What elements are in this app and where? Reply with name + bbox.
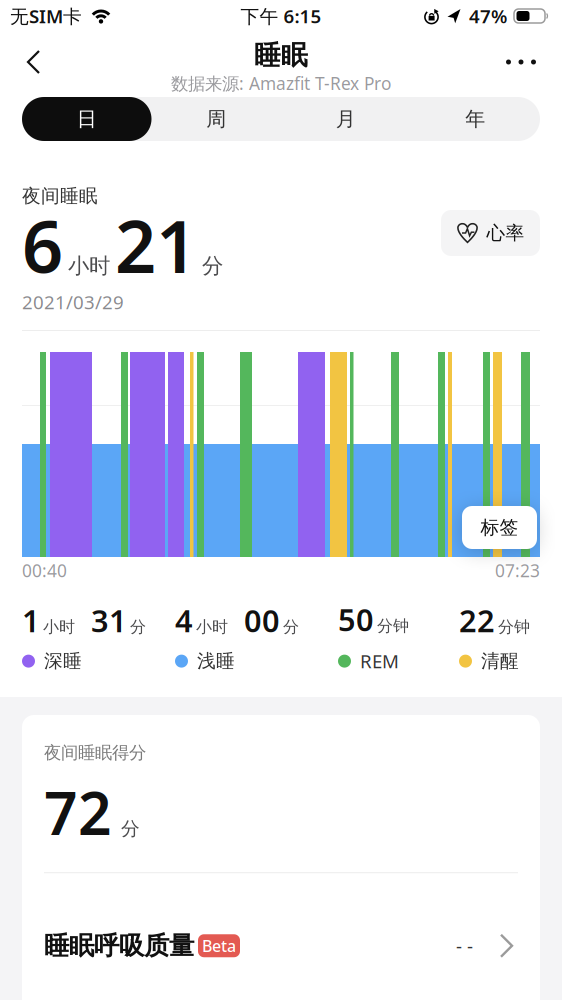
staticText: 标签 [480,516,518,539]
staticText: 47% [469,4,507,28]
staticText: 4 [175,600,193,641]
staticText: 无SIM卡 [10,4,82,28]
staticText: 72 [44,773,112,851]
staticText: 清醒 [481,650,519,673]
button[interactable]: 心率 [441,210,540,256]
staticText: 周 [206,107,226,131]
staticText: 夜间睡眠 [22,184,98,207]
staticText: 分钟 [377,616,409,636]
staticText: 浅睡 [197,650,235,673]
button[interactable]: 标签 [462,506,537,549]
staticText: 小时 [68,253,110,279]
staticText: 小时 [196,617,228,637]
staticText: 分 [130,617,146,637]
staticText: 分 [121,817,140,840]
staticText: 分 [283,617,299,637]
button[interactable]: 年 [410,97,540,141]
staticText: 日 [77,107,97,131]
button[interactable]: 睡眠呼吸质量 [44,873,518,961]
button[interactable]: 月 [281,97,410,141]
button[interactable] [0,41,39,83]
staticText: 6 [22,197,63,293]
staticText: 数据来源: Amazfit T-Rex Pro [171,72,391,95]
staticText: 07:23 [495,559,540,582]
button[interactable] [506,45,562,78]
staticText: 50 [338,599,374,640]
staticText: Beta [202,935,236,956]
staticText: REM [360,649,399,673]
staticText: 分钟 [498,617,530,637]
staticText: 夜间睡眠得分 [44,742,146,763]
staticText: 睡眠 [254,39,308,72]
staticText: 小时 [43,617,75,637]
staticText: - - [456,933,473,958]
button[interactable]: 日 [22,97,151,141]
staticText: 睡眠呼吸质量 [44,930,194,961]
staticText: 年 [465,107,485,131]
staticText: 深睡 [44,650,82,673]
staticText: 2021/03/29 [22,290,124,314]
button[interactable]: 周 [151,97,281,141]
staticText: 22 [459,600,495,641]
staticText: 00 [244,600,280,641]
staticText: 下午 6:15 [240,4,321,28]
staticText: 21 [115,197,197,293]
staticText: 心率 [486,221,524,244]
staticText: 31 [91,600,127,641]
staticText: 月 [336,107,356,131]
staticText: 分 [202,253,223,279]
staticText: 00:40 [22,559,67,582]
staticText: 1 [22,600,40,641]
